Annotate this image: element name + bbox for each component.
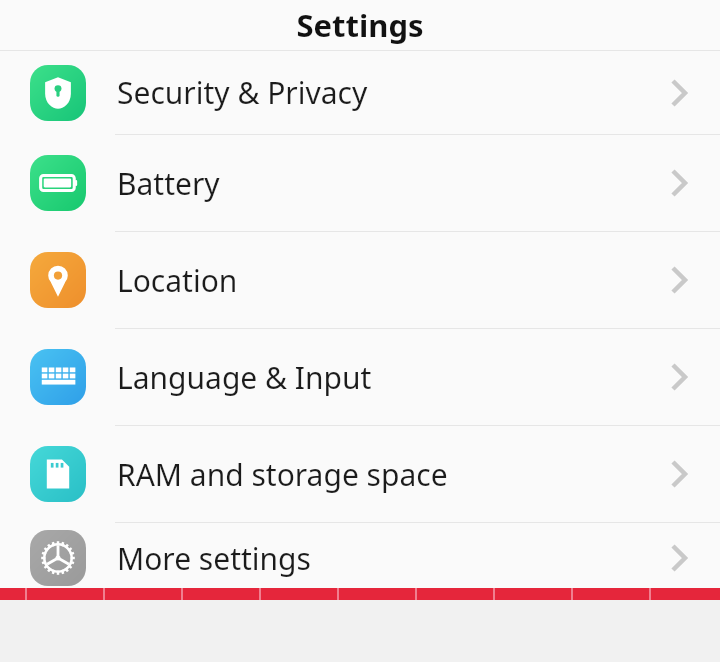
button[interactable]: Location xyxy=(0,232,720,328)
staticText: Language & Input xyxy=(117,357,657,398)
staticText: More settings xyxy=(117,538,657,579)
button[interactable]: RAM and storage space xyxy=(0,426,720,522)
button[interactable]: Battery xyxy=(0,135,720,231)
button[interactable]: Security & Privacy xyxy=(0,51,720,134)
staticText: RAM and storage space xyxy=(117,454,657,495)
button[interactable]: Language & Input xyxy=(0,329,720,425)
staticText: Settings xyxy=(296,4,424,46)
staticText: Battery xyxy=(117,163,657,204)
button[interactable]: More settings xyxy=(0,523,720,593)
staticText: Security & Privacy xyxy=(117,72,657,113)
staticText: Location xyxy=(117,260,657,301)
